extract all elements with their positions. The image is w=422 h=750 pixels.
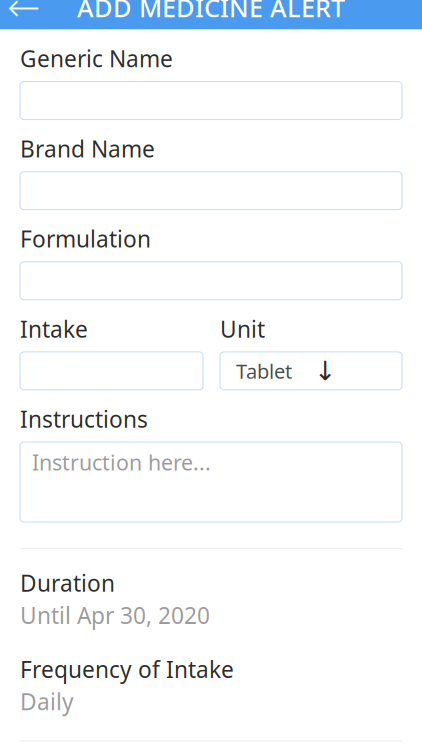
button[interactable]: Duration — [20, 566, 402, 632]
button[interactable] — [20, 352, 203, 390]
button[interactable]: Back — [0, 0, 48, 29]
staticText: Brand Name — [20, 134, 155, 164]
button[interactable]: Instruction here... — [20, 442, 402, 522]
button[interactable]: Frequency of Intake — [20, 652, 402, 718]
staticText: ↓ — [314, 356, 336, 386]
staticText: Formulation — [20, 224, 151, 254]
staticText: Instruction here... — [32, 448, 211, 476]
staticText: Duration — [20, 568, 115, 598]
staticText: Instructions — [20, 404, 148, 434]
staticText: ADD MEDICINE ALERT — [77, 0, 345, 24]
button[interactable]: Tablet — [220, 352, 402, 390]
staticText: Tablet — [236, 358, 292, 384]
staticText: Intake — [20, 314, 88, 344]
button[interactable] — [20, 172, 402, 210]
staticText: Frequency of Intake — [20, 654, 234, 684]
staticText: Unit — [220, 314, 265, 344]
staticText: ← — [7, 0, 41, 30]
staticText: Daily — [20, 686, 74, 716]
button[interactable] — [20, 262, 402, 300]
button[interactable] — [20, 82, 402, 120]
staticText: Until Apr 30, 2020 — [20, 600, 210, 630]
staticText: Generic Name — [20, 43, 173, 74]
